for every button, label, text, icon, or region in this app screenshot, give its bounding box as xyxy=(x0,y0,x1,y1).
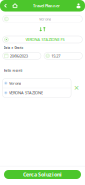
button[interactable]: Back xyxy=(1,0,10,11)
staticText: VERONA STAZIONE FS xyxy=(25,37,64,42)
button[interactable]: 15:27 xyxy=(44,52,82,59)
button[interactable]: Cerca Soluzioni xyxy=(4,170,81,179)
button[interactable]: VERONA STAZIONE xyxy=(3,88,71,97)
button[interactable]: 20/06/2023 xyxy=(3,52,41,59)
staticText: Verona xyxy=(9,80,21,86)
button[interactable]: Verona xyxy=(3,79,71,88)
staticText: Data e Orario xyxy=(4,46,24,50)
staticText: Cerca Soluzioni xyxy=(23,171,62,178)
staticText: 20/06/2023 xyxy=(10,53,28,58)
staticText: ✕ xyxy=(74,84,80,92)
button[interactable]: VERONA STAZIONE FS xyxy=(3,36,82,43)
button[interactable]: Swap stations xyxy=(39,27,46,31)
button[interactable]: Remove recent route xyxy=(74,85,80,91)
button[interactable]: Profile xyxy=(73,0,84,11)
staticText: Verona xyxy=(39,16,51,22)
button[interactable]: Verona xyxy=(3,15,82,22)
button[interactable]: Home xyxy=(10,0,20,11)
staticText: Tratte recenti xyxy=(4,69,23,72)
staticText: VERONA STAZIONE xyxy=(9,90,43,95)
staticText: 15:27 xyxy=(51,53,60,58)
staticText: Travel Planner xyxy=(33,3,60,8)
